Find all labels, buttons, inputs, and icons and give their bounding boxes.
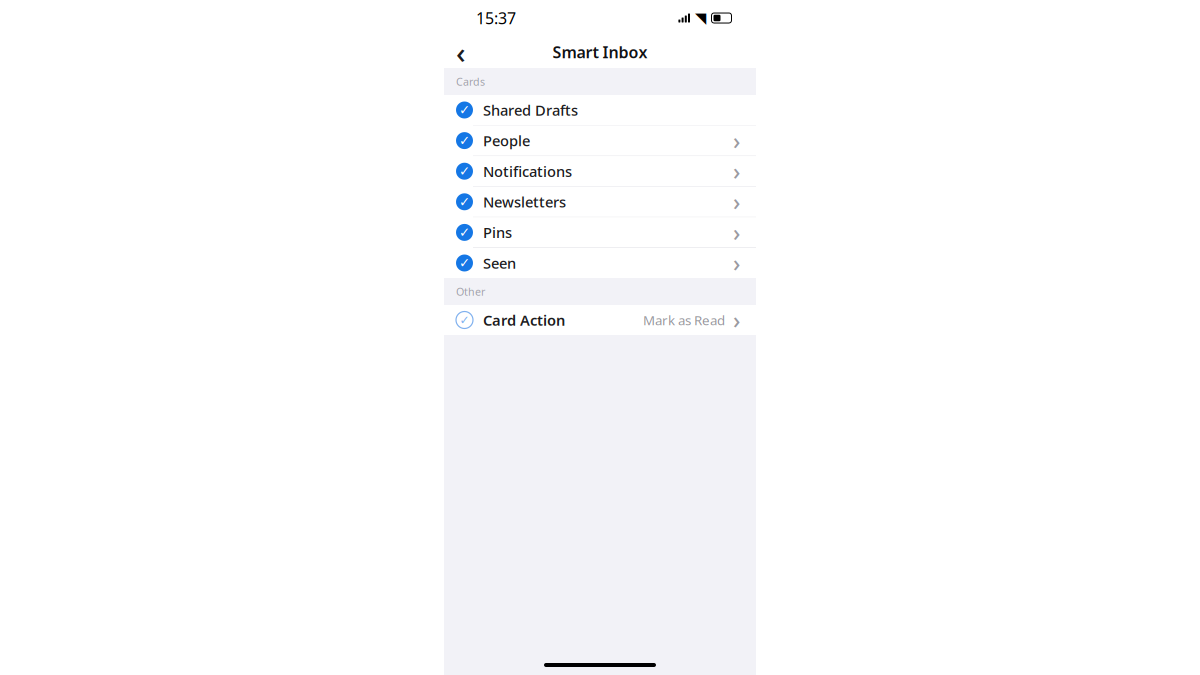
staticText: › (733, 305, 740, 335)
button[interactable]: ✓ (444, 248, 756, 278)
button[interactable]: ✓ (444, 95, 756, 125)
staticText: Shared Drafts (483, 100, 578, 120)
staticText: › (733, 156, 740, 186)
staticText: Smart Inbox (552, 41, 647, 63)
staticText: ✓ (459, 255, 470, 270)
staticText: People (483, 131, 530, 150)
staticText: 15:37 (476, 7, 516, 29)
staticText: Newsletters (483, 192, 566, 212)
button[interactable]: ✓ (444, 187, 756, 217)
staticText: ◥ (695, 10, 706, 26)
staticText: Mark as Read (643, 311, 725, 329)
staticText: ✓ (459, 133, 470, 148)
button[interactable]: ✓ (444, 217, 756, 247)
staticText: Notifications (483, 161, 572, 181)
staticText: › (733, 217, 740, 247)
staticText: › (733, 187, 740, 217)
staticText: Other (456, 284, 485, 299)
button[interactable]: ✓ (444, 156, 756, 186)
button[interactable]: Back (444, 37, 478, 67)
staticText: ✓ (459, 194, 470, 209)
staticText: › (733, 125, 740, 156)
staticText: ‹ (456, 32, 466, 71)
staticText: ✓ (459, 102, 470, 117)
staticText: ✓ (459, 313, 469, 327)
staticText: Cards (456, 74, 485, 89)
staticText: Card Action (483, 310, 565, 330)
staticText: ✓ (459, 164, 470, 179)
staticText: Seen (483, 253, 516, 273)
staticText: Pins (483, 223, 512, 242)
staticText: ✓ (459, 225, 470, 240)
staticText: › (733, 248, 740, 278)
button[interactable]: ✓ (444, 126, 756, 156)
button[interactable]: ✓ (444, 305, 756, 335)
